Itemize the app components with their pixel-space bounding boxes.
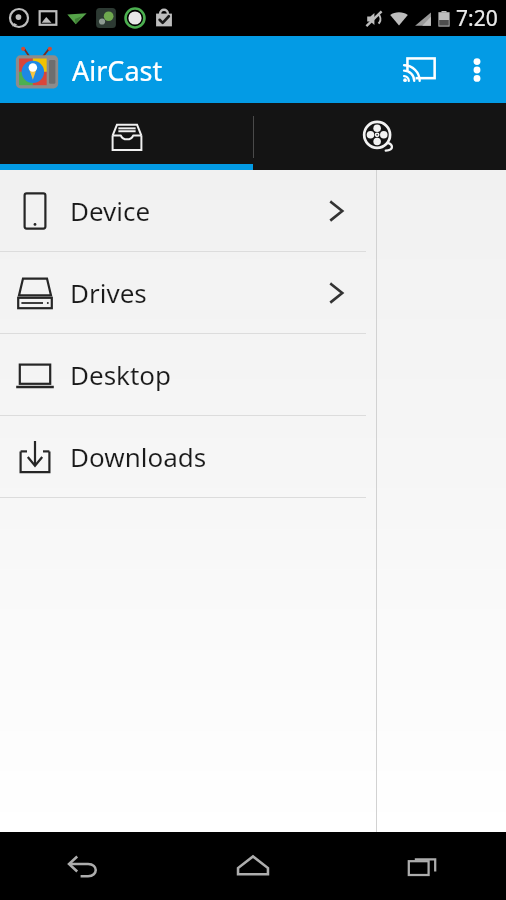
button[interactable]: Drives bbox=[0, 252, 376, 333]
staticText: AirCast bbox=[72, 52, 163, 89]
button[interactable]: Home bbox=[168, 832, 337, 900]
button[interactable]: Back bbox=[0, 832, 168, 900]
button[interactable]: Desktop bbox=[0, 334, 376, 415]
button[interactable]: Downloads bbox=[0, 416, 376, 497]
button[interactable]: Cast bbox=[390, 41, 448, 99]
button[interactable]: Files tab bbox=[0, 103, 253, 170]
staticText: 7:20 bbox=[456, 4, 498, 33]
staticText: Drives bbox=[70, 275, 326, 310]
staticText: Device bbox=[70, 193, 326, 228]
button[interactable]: More options bbox=[448, 41, 506, 99]
staticText: Desktop bbox=[70, 357, 376, 392]
button[interactable]: Recent apps bbox=[337, 832, 506, 900]
button[interactable]: Media tab bbox=[253, 103, 506, 170]
button[interactable]: Device bbox=[0, 170, 376, 251]
staticText: Downloads bbox=[70, 439, 376, 474]
